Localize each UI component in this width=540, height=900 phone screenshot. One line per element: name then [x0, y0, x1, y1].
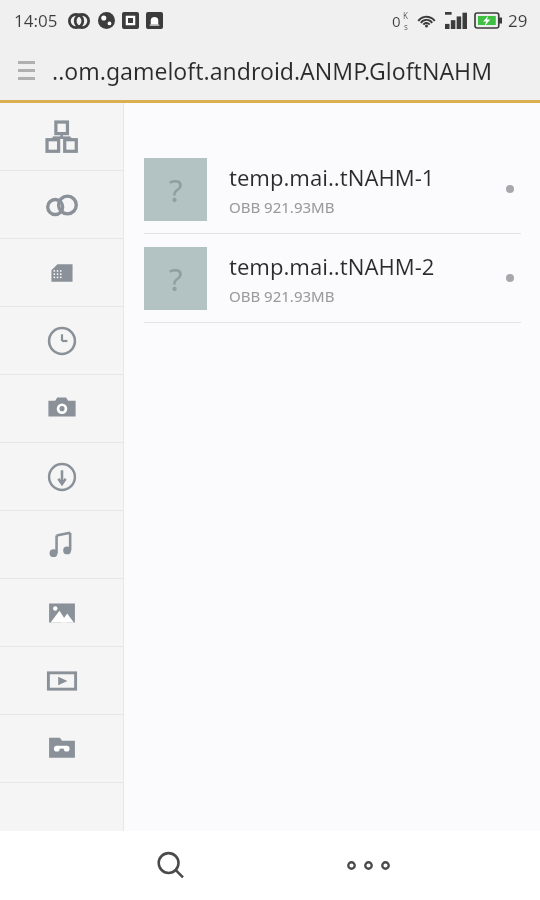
button[interactable]: Camera: [0, 375, 124, 443]
staticText: s: [404, 21, 408, 32]
button[interactable]: Images: [0, 579, 124, 647]
staticText: temp.mai..tNAHM-1: [229, 162, 435, 192]
button[interactable]: Cloud: [0, 171, 124, 239]
staticText: ..om.gameloft.android.ANMP.GloftNAHM: [52, 55, 492, 86]
staticText: ?: [169, 169, 183, 211]
button[interactable]: More options: [480, 234, 540, 322]
button[interactable]: Apps: [0, 103, 124, 171]
staticText: K: [403, 10, 408, 21]
staticText: ?: [169, 258, 183, 300]
button[interactable]: Menu: [0, 44, 52, 96]
button[interactable]: ?: [124, 145, 540, 233]
button[interactable]: Search: [131, 831, 211, 900]
button[interactable]: Videos: [0, 647, 124, 715]
button[interactable]: Music: [0, 511, 124, 579]
button[interactable]: Recent: [0, 307, 124, 375]
staticText: temp.mai..tNAHM-2: [229, 251, 435, 281]
staticText: 29: [508, 9, 528, 32]
button[interactable]: Downloads: [0, 443, 124, 511]
staticText: OBB 921.93MB: [229, 197, 335, 217]
staticText: 14:05: [14, 9, 58, 32]
button[interactable]: ?: [124, 234, 540, 322]
button[interactable]: More: [328, 831, 408, 900]
staticText: OBB 921.93MB: [229, 286, 335, 306]
button[interactable]: Storage: [0, 239, 124, 307]
button[interactable]: Folders: [0, 715, 124, 783]
staticText: 0: [392, 11, 401, 31]
button[interactable]: More options: [480, 145, 540, 233]
